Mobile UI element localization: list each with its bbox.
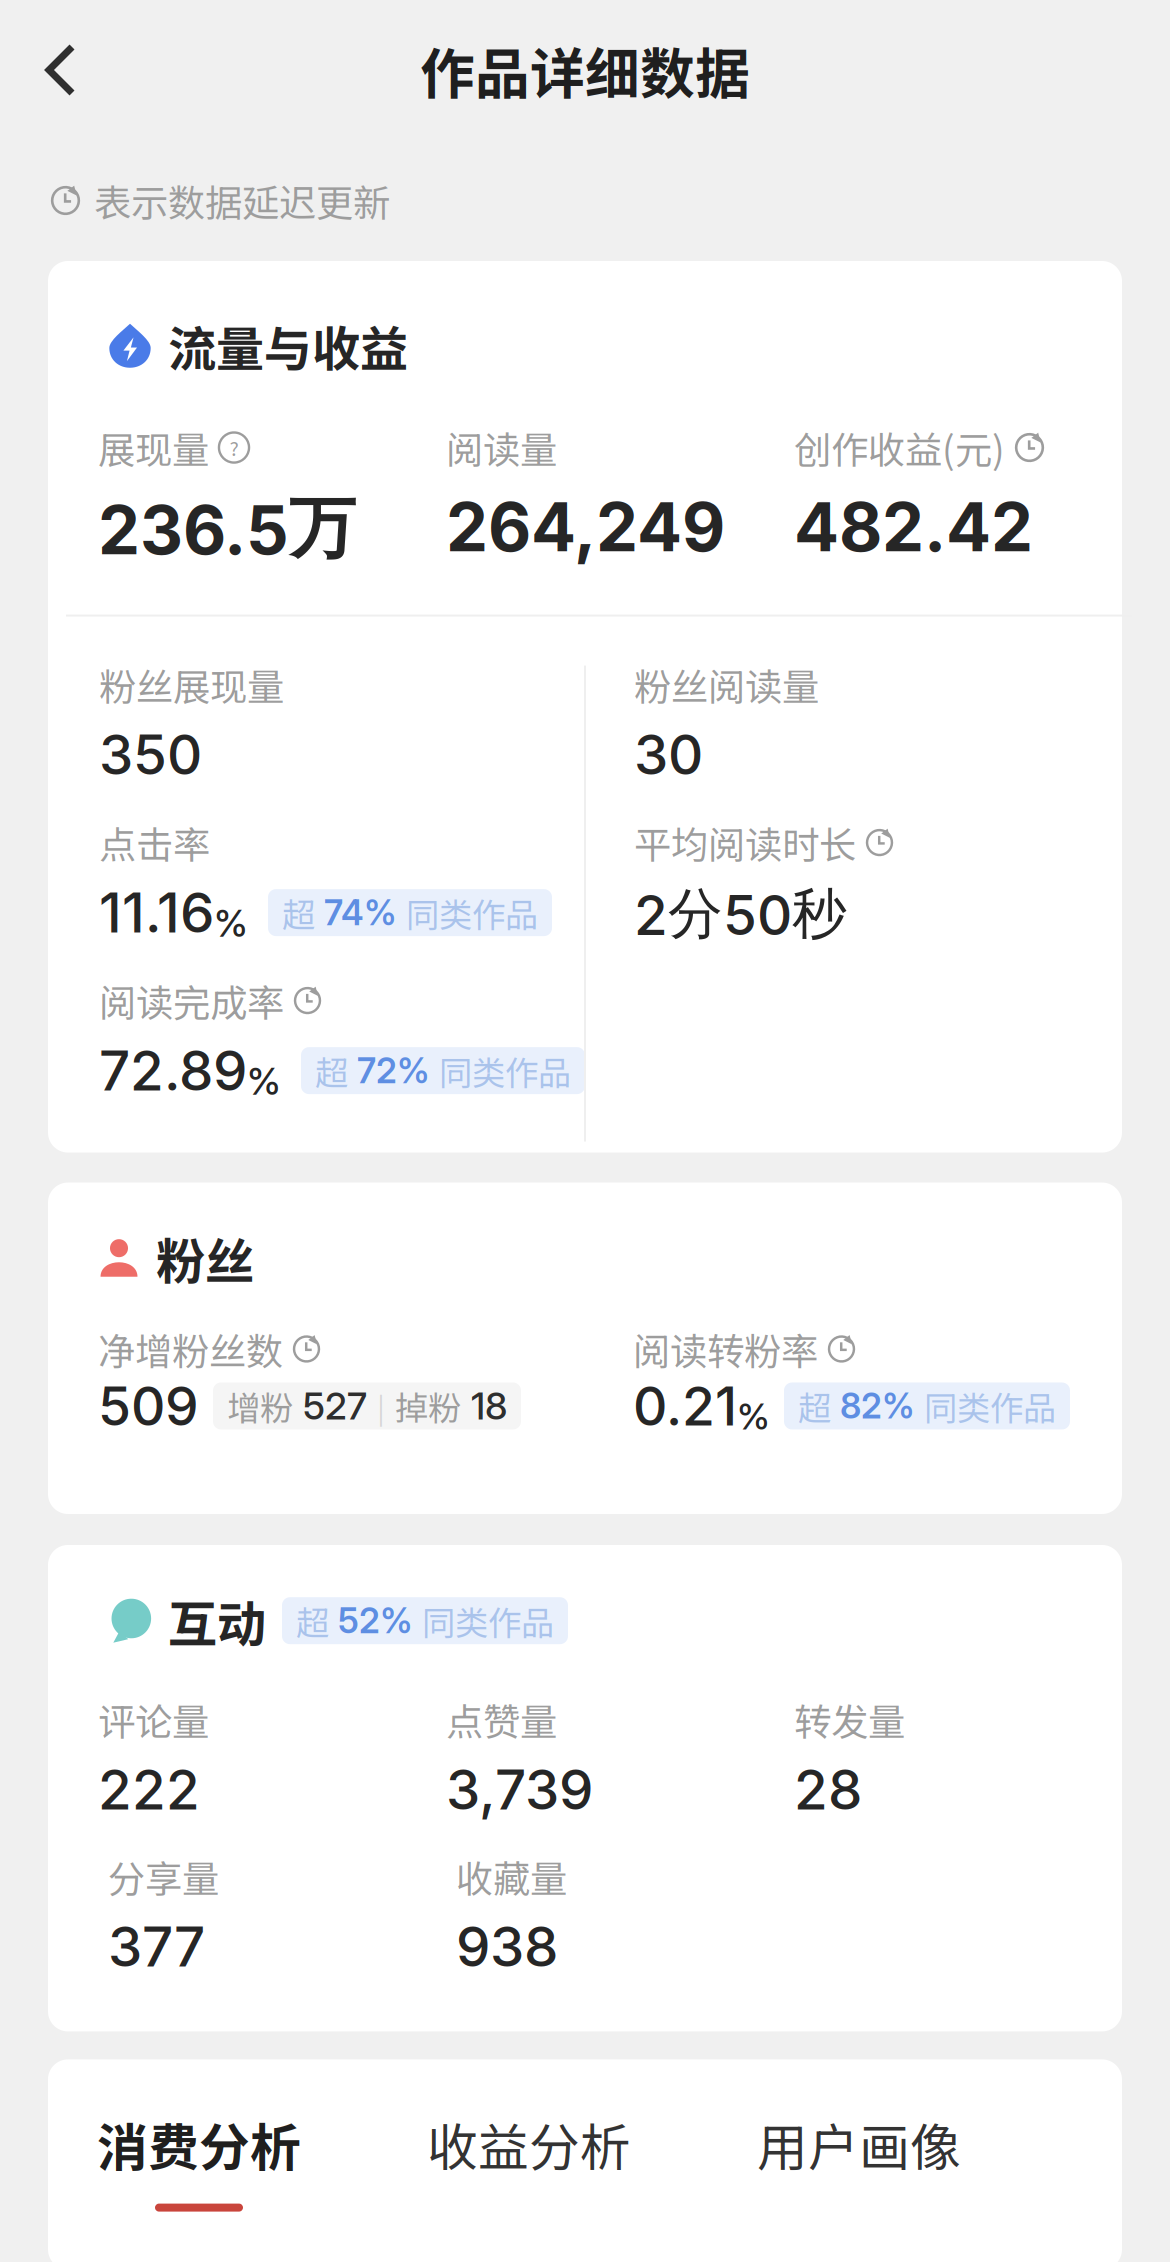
staticText: 同类作品 <box>439 1046 571 1095</box>
staticText: 阅读转粉率 <box>633 1322 818 1376</box>
staticText: 阅读量 <box>446 420 557 475</box>
staticText: 粉丝 <box>156 1222 254 1294</box>
staticText: 粉丝阅读量 <box>634 657 819 712</box>
staticText: ? <box>229 433 238 462</box>
staticText: % <box>737 1395 770 1438</box>
staticText: 72.89 <box>99 1037 247 1104</box>
staticText: 点击率 <box>99 815 210 870</box>
staticText: 236.5万 <box>98 487 356 571</box>
staticText: 流量与收益 <box>168 311 408 380</box>
staticText: 消费分析 <box>97 2107 301 2181</box>
button[interactable]: 用户画像 <box>694 2089 1024 2229</box>
staticText: 11.16 <box>99 879 214 946</box>
staticText: 74% <box>324 892 397 933</box>
staticText: 收藏量 <box>456 1849 567 1903</box>
staticText: 938 <box>456 1913 558 1979</box>
staticText: 482.42 <box>794 487 1033 567</box>
staticText: 粉丝展现量 <box>99 657 284 712</box>
staticText: 表示数据延迟更新 <box>94 173 390 228</box>
button[interactable]: 收益分析 <box>364 2089 694 2229</box>
staticText: 创作收益(元) <box>794 420 1005 475</box>
staticText: 82% <box>840 1385 915 1427</box>
staticText: 阅读完成率 <box>99 973 284 1028</box>
staticText: 转发量 <box>794 1692 905 1746</box>
staticText: 掉粉 <box>395 1382 461 1430</box>
staticText: 净增粉丝数 <box>98 1322 283 1376</box>
staticText: 评论量 <box>98 1692 209 1746</box>
staticText: 509 <box>98 1374 199 1438</box>
staticText: 377 <box>108 1913 205 1979</box>
button[interactable]: Back <box>0 14 108 126</box>
staticText: 超 <box>315 1046 348 1095</box>
staticText: % <box>214 900 248 946</box>
staticText: 超 <box>798 1382 831 1430</box>
staticText: 同类作品 <box>924 1382 1056 1430</box>
staticText: 222 <box>98 1756 200 1822</box>
staticText: | <box>377 1385 385 1427</box>
staticText: 350 <box>99 721 202 788</box>
staticText: 收益分析 <box>427 2107 631 2181</box>
staticText: 28 <box>794 1756 862 1822</box>
staticText: 展现量 <box>98 420 209 475</box>
staticText: 527 <box>303 1383 367 1429</box>
staticText: 平均阅读时长 <box>634 815 856 870</box>
staticText: 作品详细数据 <box>420 30 750 110</box>
staticText: 互动 <box>168 1585 266 1656</box>
staticText: 点赞量 <box>446 1692 557 1746</box>
staticText: 72% <box>357 1050 430 1091</box>
staticText: 18 <box>471 1383 507 1429</box>
staticText: 超 <box>296 1597 329 1645</box>
staticText: 30 <box>634 721 703 788</box>
staticText: 分享量 <box>108 1849 219 1903</box>
staticText: 同类作品 <box>406 888 538 937</box>
staticText: % <box>247 1058 281 1104</box>
staticText: 0.21 <box>633 1374 737 1438</box>
staticText: 52% <box>338 1600 413 1642</box>
staticText: 增粉 <box>227 1382 293 1430</box>
staticText: 同类作品 <box>422 1597 554 1645</box>
staticText: 264,249 <box>446 487 725 567</box>
staticText: 2分50秒 <box>634 879 847 948</box>
staticText: 3,739 <box>446 1756 593 1822</box>
button[interactable]: 消费分析 <box>34 2089 364 2229</box>
staticText: 超 <box>282 888 315 937</box>
staticText: 用户画像 <box>757 2107 961 2181</box>
